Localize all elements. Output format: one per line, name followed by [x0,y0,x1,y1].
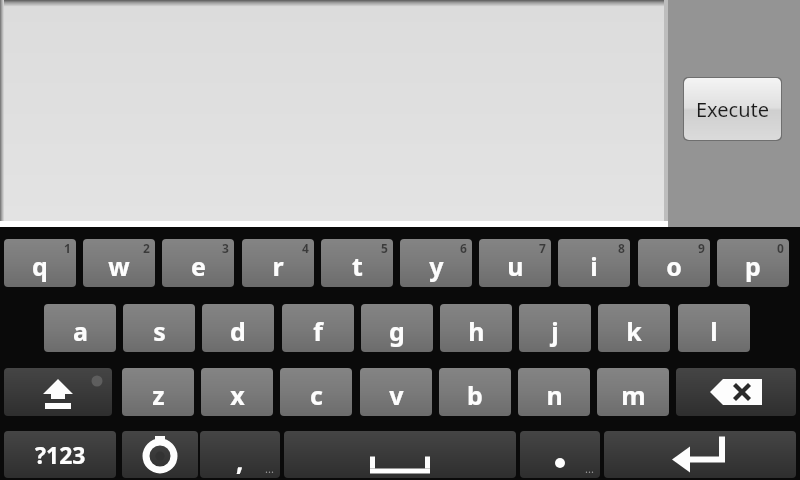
staticText: n [546,378,563,412]
staticText: , [236,443,244,478]
button[interactable]: t [321,239,393,287]
staticText: w [108,249,130,283]
button[interactable]: x [201,368,273,416]
button[interactable]: n [518,368,590,416]
staticText: 6 [460,240,467,256]
staticText: f [313,314,323,348]
staticText: h [468,314,485,348]
button[interactable]: w [83,239,155,287]
staticText: o [666,249,682,283]
button[interactable]: i [558,239,630,287]
button[interactable]: e [162,239,234,287]
staticText: s [153,314,166,348]
staticText: 9 [698,240,705,256]
button[interactable]: q [4,239,76,287]
button[interactable]: l [678,304,750,352]
staticText: k [626,314,642,348]
button[interactable]: Execute [684,78,781,140]
staticText: l [710,314,718,348]
staticText: 8 [618,240,625,256]
staticText: x [230,378,245,412]
staticText: 1 [64,240,71,256]
button[interactable]: u [479,239,551,287]
staticText: v [389,378,404,412]
button[interactable]: Backspace [676,368,796,416]
staticText: ... [265,461,274,476]
button[interactable]: m [597,368,669,416]
staticText: 4 [302,240,309,256]
staticText: y [429,249,444,283]
button[interactable]: b [439,368,511,416]
button[interactable]: f [282,304,354,352]
staticText: 0 [777,240,784,256]
button[interactable]: g [361,304,433,352]
staticText: 7 [539,240,546,256]
button[interactable]: Period [520,431,600,478]
button[interactable]: Change input method [122,431,198,478]
button[interactable]: a [44,304,116,352]
staticText: p [745,249,761,283]
button[interactable]: Shift [4,368,112,416]
button[interactable]: r [242,239,314,287]
button[interactable]: z [122,368,194,416]
staticText: m [621,378,646,412]
button[interactable]: h [440,304,512,352]
button[interactable]: Space [284,431,516,478]
button[interactable]: s [123,304,195,352]
staticText: z [152,378,165,412]
button[interactable] [0,0,668,227]
button[interactable]: d [202,304,274,352]
button[interactable]: Symbols [4,431,116,478]
staticText: g [389,314,405,348]
staticText: ?123 [35,439,86,470]
staticText: e [191,249,206,283]
staticText: u [507,249,524,283]
staticText: a [73,314,88,348]
button[interactable]: Comma [200,431,280,478]
staticText: i [590,249,598,283]
button[interactable]: c [280,368,352,416]
staticText: 2 [143,240,150,256]
button[interactable]: y [400,239,472,287]
staticText: t [352,249,363,283]
staticText: r [272,249,284,283]
button[interactable]: j [519,304,591,352]
staticText: d [230,314,246,348]
staticText: 3 [222,240,229,256]
staticText: Execute [696,96,770,123]
staticText: b [467,378,483,412]
button[interactable]: o [638,239,710,287]
staticText: j [551,314,559,348]
staticText: q [32,249,48,283]
staticText: 5 [381,240,388,256]
button[interactable]: v [360,368,432,416]
staticText: c [310,378,323,412]
button[interactable]: k [598,304,670,352]
button[interactable]: p [717,239,789,287]
button[interactable]: Enter [604,431,796,478]
staticText: ... [585,461,594,476]
